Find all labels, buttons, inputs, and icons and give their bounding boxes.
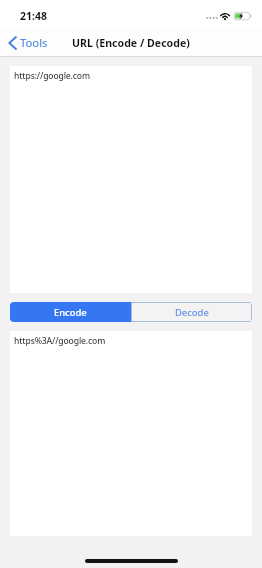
- button[interactable]: Back to Tools: [8, 35, 48, 50]
- button[interactable]: https%3A//google.com: [10, 331, 252, 536]
- staticText: https%3A//google.com: [14, 335, 106, 347]
- staticText: Tools: [20, 35, 48, 50]
- staticText: URL (Encode / Decode): [72, 36, 190, 50]
- button[interactable]: Decode: [131, 302, 252, 322]
- button[interactable]: Encode: [10, 302, 131, 322]
- button[interactable]: https://google.com: [10, 66, 252, 293]
- staticText: https://google.com: [14, 70, 90, 82]
- staticText: Encode: [54, 306, 87, 319]
- staticText: 21:48: [20, 9, 47, 23]
- staticText: Decode: [175, 306, 209, 319]
